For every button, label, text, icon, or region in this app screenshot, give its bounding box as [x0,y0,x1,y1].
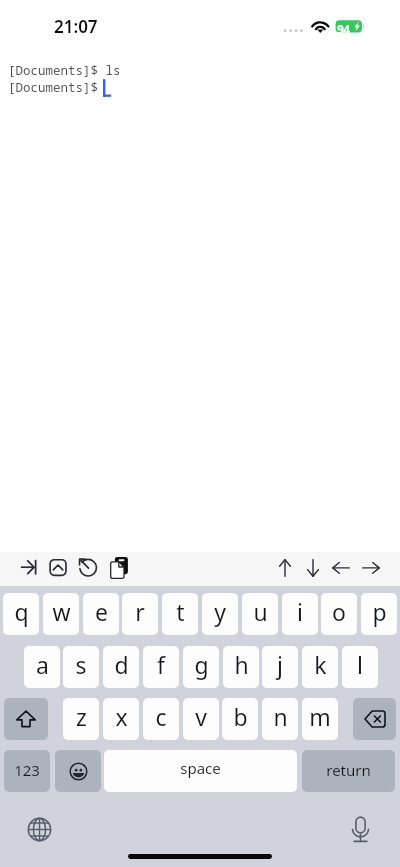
staticText: k [314,649,327,680]
button[interactable]: i [282,593,318,635]
staticText: x [115,701,128,732]
staticText: b [233,701,248,732]
button[interactable]: p [361,593,397,635]
staticText: a [36,649,49,680]
button[interactable]: Backspace [353,698,396,740]
staticText: u [253,596,268,627]
button[interactable]: n [262,698,298,740]
button[interactable]: c [143,698,179,740]
button[interactable]: u [242,593,278,635]
staticText: t [176,596,185,627]
button[interactable]: x [103,698,139,740]
staticText: l [357,649,363,680]
staticText: z [76,701,87,732]
staticText: return [326,760,371,780]
button[interactable]: z [63,698,99,740]
staticText: d [114,649,129,680]
staticText: m [309,701,331,732]
staticText: r [135,596,145,627]
button[interactable]: r [122,593,158,635]
staticText: q [14,596,29,627]
button[interactable]: Left [326,556,356,586]
button[interactable]: Shift [4,698,48,740]
staticText: 123 [14,760,40,780]
button[interactable]: Right [356,556,386,586]
staticText: [Documents]$ [8,79,99,96]
button[interactable]: k [302,646,338,688]
button[interactable]: f [143,646,179,688]
staticText: p [372,596,387,627]
staticText: c [155,701,167,732]
staticText: e [95,596,108,627]
staticText: 21:07 [54,15,98,38]
button[interactable]: q [3,593,39,635]
button[interactable]: return [302,750,395,792]
button[interactable]: Paste [104,556,134,586]
staticText: y [214,596,226,627]
button[interactable]: h [223,646,259,688]
button[interactable]: Up [270,556,300,586]
staticText: f [157,649,165,680]
staticText: s [75,649,87,680]
staticText: j [277,649,283,680]
button[interactable]: y [202,593,238,635]
button[interactable]: Change keyboard [27,817,52,842]
button[interactable]: s [63,646,99,688]
button[interactable]: Dictate [347,815,374,842]
button[interactable]: Down [298,556,328,586]
staticText: h [234,649,249,680]
staticText: g [194,649,209,680]
button[interactable]: a [24,646,60,688]
staticText: space [180,758,221,778]
staticText: i [297,596,303,627]
button[interactable]: Control [43,556,73,586]
button[interactable]: 123 [4,750,50,792]
staticText: n [273,701,288,732]
button[interactable]: Undo [73,556,103,586]
button[interactable]: m [302,698,338,740]
button[interactable]: l [342,646,378,688]
button[interactable]: j [262,646,298,688]
button[interactable]: e [83,593,119,635]
button[interactable]: v [183,698,219,740]
button[interactable]: b [222,698,258,740]
button[interactable]: space [104,750,297,792]
button[interactable]: Emoji [55,750,101,792]
button[interactable]: Tab [13,556,43,586]
staticText: [Documents]$ ls [8,62,121,79]
button[interactable]: g [183,646,219,688]
staticText: o [332,596,346,627]
button[interactable]: w [43,593,79,635]
staticText: w [52,596,71,627]
button[interactable]: d [103,646,139,688]
staticText: v [195,701,207,732]
button[interactable]: o [321,593,357,635]
button[interactable]: t [162,593,198,635]
staticText: 94 [337,21,350,37]
